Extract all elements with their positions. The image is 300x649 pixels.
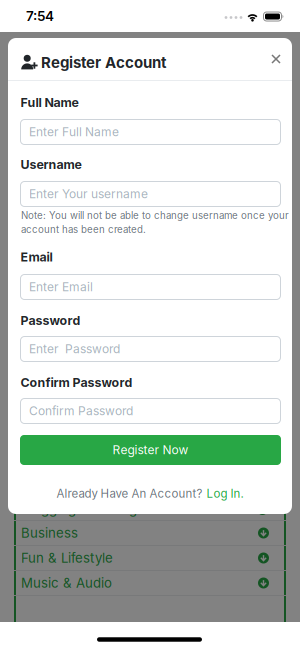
- staticText: Enter Password: [29, 342, 120, 356]
- button[interactable]: Music & Audio: [14, 570, 286, 595]
- staticText: account has been created.: [21, 223, 146, 235]
- staticText: Username: [20, 157, 81, 172]
- staticText: Confirm Password: [29, 404, 133, 418]
- staticText: Enter Full Name: [29, 125, 119, 139]
- staticText: Enter Your username: [29, 187, 148, 201]
- staticText: Register Now: [112, 443, 188, 457]
- staticText: 7:54: [26, 8, 54, 24]
- staticText: Email: [20, 249, 52, 264]
- staticText: Fun & Lifestyle: [21, 550, 113, 566]
- staticText: Business: [21, 525, 78, 541]
- staticText: Blogging & Writing: [21, 501, 137, 517]
- staticText: Full Name: [20, 95, 78, 110]
- button[interactable]: Close: [262, 45, 290, 73]
- button[interactable]: Business: [14, 520, 286, 545]
- staticText: Confirm Password: [20, 375, 132, 390]
- staticText: Password: [20, 313, 80, 328]
- staticText: Log In.: [206, 486, 243, 500]
- staticText: Music & Audio: [21, 575, 112, 591]
- button[interactable]: Fun & Lifestyle: [14, 545, 286, 570]
- button[interactable]: Log In.: [206, 486, 243, 500]
- staticText: Enter Email: [29, 280, 93, 294]
- staticText: Note: You will not be able to change use…: [21, 209, 289, 221]
- button[interactable]: Register Now: [20, 435, 281, 465]
- staticText: Already Have An Account?: [56, 486, 202, 500]
- staticText: Register Account: [41, 53, 166, 72]
